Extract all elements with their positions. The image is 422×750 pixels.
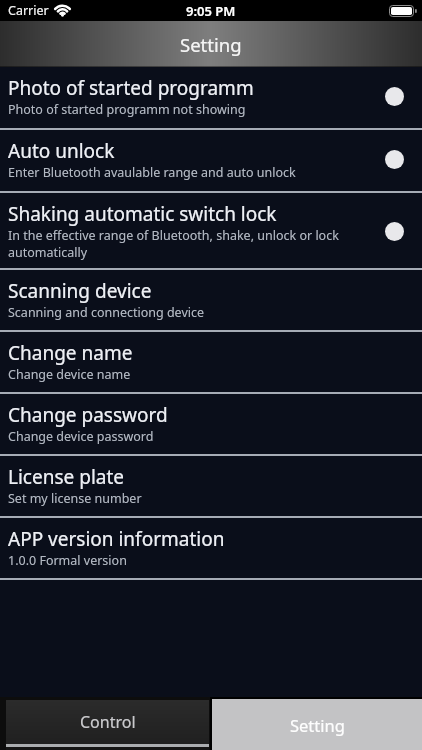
button[interactable]: Control: [0, 697, 210, 750]
staticText: Auto unlock: [8, 138, 115, 164]
staticText: Photo of started programm: [8, 75, 254, 101]
staticText: Scanning and connectiong device: [8, 304, 205, 321]
staticText: Change device password: [8, 428, 154, 445]
staticText: Change name: [8, 340, 133, 366]
staticText: Set my license number: [8, 490, 142, 507]
staticText: 9:05 PM: [186, 2, 236, 20]
button[interactable]: License plate: [0, 456, 422, 518]
button[interactable]: Auto unlock: [0, 130, 422, 193]
button[interactable]: Change password: [0, 394, 422, 456]
staticText: Setting: [290, 714, 345, 736]
button[interactable]: Shaking automatic switch lock: [0, 193, 422, 270]
button[interactable]: Change name: [0, 332, 422, 394]
staticText: 1.0.0 Formal version: [8, 552, 127, 569]
staticText: Shaking automatic switch lock: [8, 201, 277, 227]
staticText: Change password: [8, 402, 168, 428]
button[interactable]: APP version information: [0, 518, 422, 580]
staticText: APP version information: [8, 526, 225, 552]
staticText: Carrier: [8, 2, 49, 19]
staticText: Setting: [180, 32, 242, 57]
staticText: Enter Bluetooth avaulable range and auto…: [8, 164, 296, 181]
staticText: Change device name: [8, 366, 131, 383]
button[interactable]: Scanning device: [0, 270, 422, 332]
staticText: License plate: [8, 464, 125, 490]
staticText: Control: [80, 711, 136, 733]
button[interactable]: Photo of started programm: [0, 67, 422, 130]
staticText: In the effective range of Bluetooth, sha…: [8, 227, 385, 261]
button[interactable]: Setting: [212, 697, 422, 750]
staticText: Scanning device: [8, 278, 152, 304]
staticText: Photo of started programm not showing: [8, 101, 246, 118]
